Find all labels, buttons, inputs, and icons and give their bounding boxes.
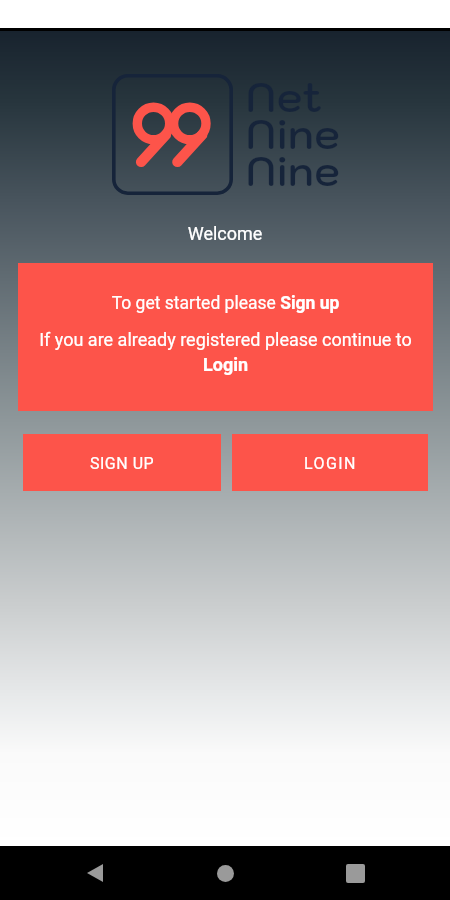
staticText: Net Nine Nine	[246, 70, 341, 197]
other: Net Nine Nine logo	[112, 74, 233, 195]
button[interactable]: Home	[205, 846, 245, 900]
staticText: SIGN UP	[90, 454, 155, 473]
staticText: If you are already registered please con…	[28, 329, 423, 375]
staticText: Welcome	[0, 223, 450, 244]
button[interactable]: Recent apps	[335, 846, 375, 900]
button[interactable]: Back	[75, 846, 115, 900]
button[interactable]: SIGN UP	[23, 434, 221, 491]
staticText: To get started please Sign up	[18, 293, 433, 314]
button[interactable]: LOGIN	[232, 434, 428, 491]
staticText: LOGIN	[304, 454, 357, 473]
